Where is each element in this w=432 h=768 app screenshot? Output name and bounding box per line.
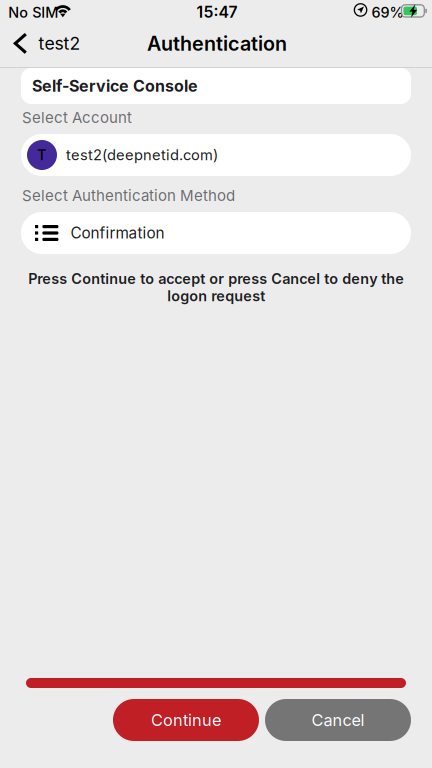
staticText: Select Account [22,108,132,127]
staticText: Self-Service Console [32,76,198,96]
staticText: Select Authentication Method [22,186,235,205]
button[interactable]: Continue [113,699,259,741]
button[interactable]: Cancel [265,699,411,741]
staticText: 69% [371,4,403,21]
staticText: Continue [151,710,221,730]
staticText: test2(deepnetid.com) [66,146,218,164]
staticText: 15:47 [196,3,237,22]
staticText: Authentication [147,32,287,55]
staticText: No SIM [8,4,58,21]
staticText: Press Continue to accept or press Cancel… [28,270,404,305]
staticText: Confirmation [70,224,164,242]
button[interactable]: test2 [0,23,104,63]
staticText: Cancel [311,710,364,730]
staticText: T [37,146,47,164]
staticText: test2 [38,33,80,54]
